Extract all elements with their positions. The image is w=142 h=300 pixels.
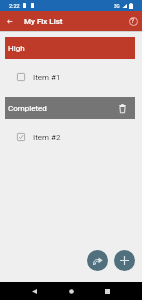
staticText: High [8, 44, 25, 53]
button[interactable]: Item #2 [0, 126, 142, 148]
button[interactable]: Help [127, 15, 139, 27]
staticText: Item #2 [33, 133, 61, 142]
staticText: ? [131, 17, 135, 25]
button[interactable]: Back [2, 14, 16, 28]
button[interactable]: Home [64, 284, 78, 298]
button[interactable]: Recents [100, 284, 114, 298]
button[interactable]: Back [27, 284, 41, 298]
button[interactable]: Completed [5, 97, 135, 119]
staticText: My Fix List [24, 17, 63, 26]
button[interactable]: High [5, 37, 135, 59]
staticText: 3G [114, 4, 120, 9]
staticText: Item #1 [33, 73, 61, 82]
staticText: Completed [8, 104, 47, 113]
button[interactable]: Add [114, 250, 135, 271]
button[interactable]: Item #1 [0, 66, 142, 88]
button[interactable]: Delete completed [115, 101, 129, 115]
button[interactable]: Share [87, 250, 108, 271]
staticText: 2:22 [9, 3, 20, 9]
